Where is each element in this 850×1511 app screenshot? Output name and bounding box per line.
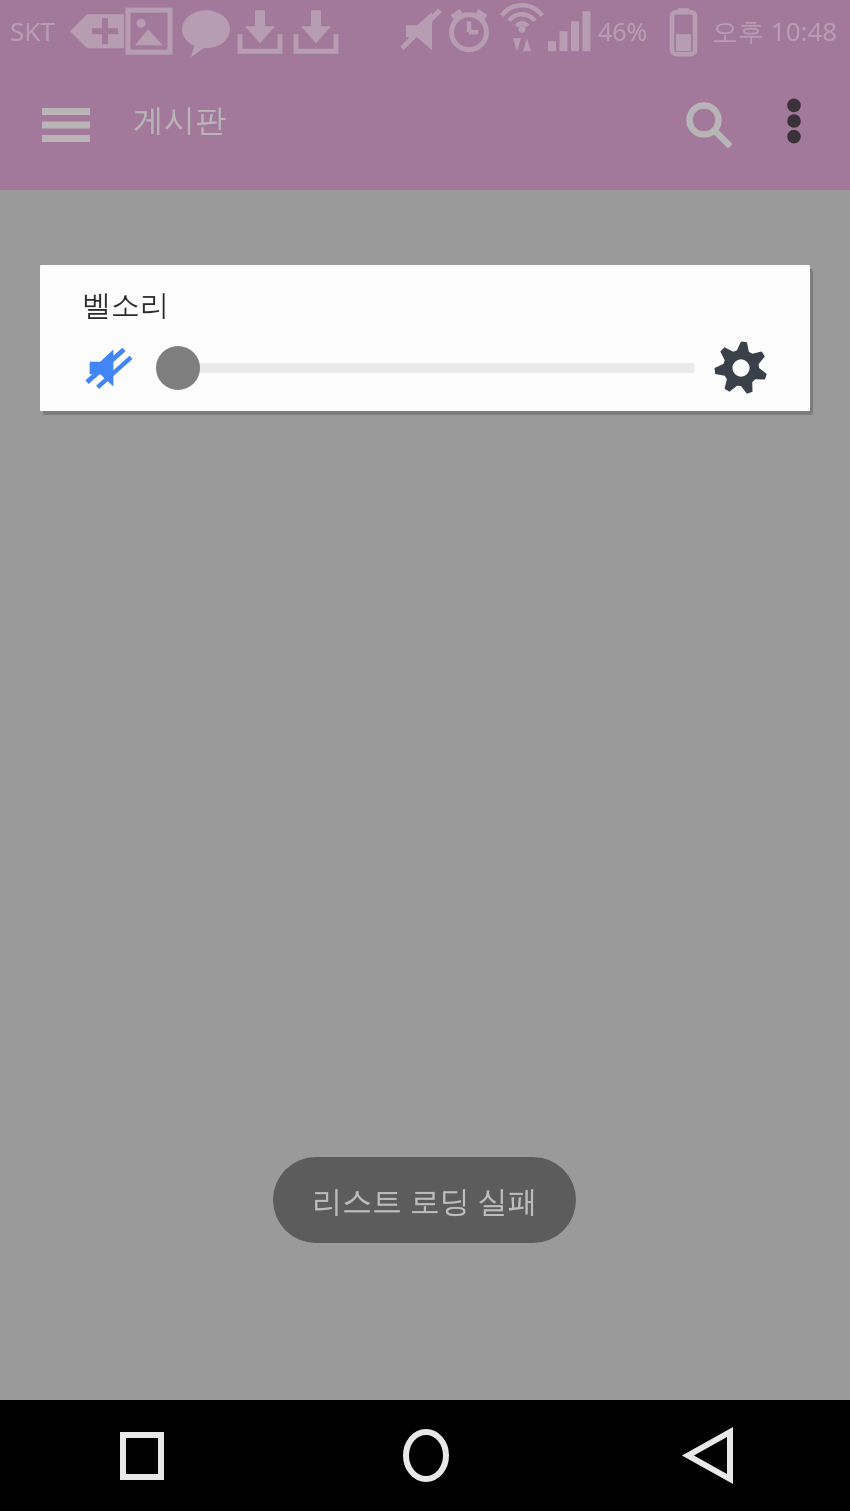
button[interactable]: 벨소리 — [40, 265, 810, 411]
button[interactable]: Settings — [710, 337, 772, 399]
button[interactable] — [154, 339, 702, 397]
button[interactable]: More options — [758, 85, 830, 157]
button[interactable]: Recents — [0, 1400, 284, 1511]
button[interactable]: Mute — [80, 339, 138, 397]
staticText: SKT — [10, 13, 55, 48]
staticText: 게시판 — [133, 101, 226, 140]
staticText: 리스트 로딩 실패 — [312, 1180, 538, 1221]
staticText: 46% — [598, 14, 648, 48]
button[interactable]: Menu — [26, 96, 106, 154]
staticText: 벨소리 — [82, 287, 169, 324]
button[interactable]: Back — [567, 1400, 850, 1511]
button[interactable]: Search — [668, 85, 750, 167]
staticText: 오후 10:48 — [712, 13, 838, 49]
button[interactable]: Home — [284, 1400, 567, 1511]
